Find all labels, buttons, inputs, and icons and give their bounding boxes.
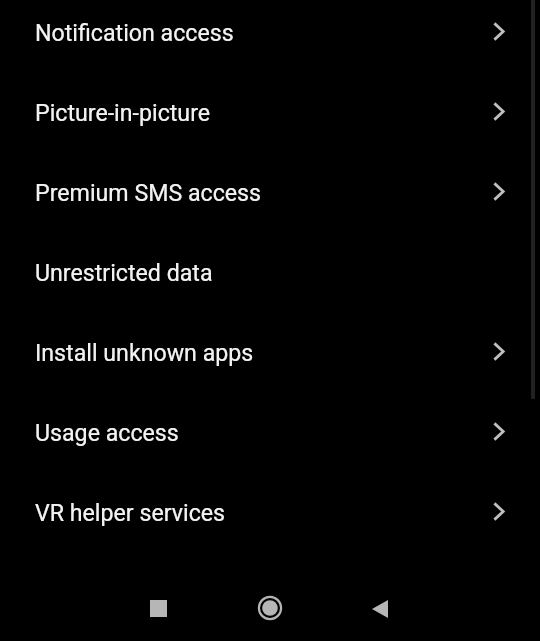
staticText: Picture-in-picture bbox=[35, 99, 211, 126]
button[interactable]: Home bbox=[240, 578, 300, 638]
button[interactable]: Unrestricted data bbox=[0, 240, 540, 320]
staticText: Premium SMS access bbox=[35, 179, 262, 206]
button[interactable]: Install unknown apps bbox=[0, 320, 540, 400]
button[interactable]: Premium SMS access bbox=[0, 160, 540, 240]
button[interactable]: Usage access bbox=[0, 400, 540, 480]
button[interactable]: Picture-in-picture bbox=[0, 80, 540, 160]
button[interactable]: Recent apps bbox=[128, 578, 188, 638]
staticText: VR helper services bbox=[35, 499, 226, 526]
button[interactable]: VR helper services bbox=[0, 480, 540, 560]
staticText: Install unknown apps bbox=[35, 339, 254, 366]
staticText: Notification access bbox=[35, 19, 234, 46]
button[interactable]: Notification access bbox=[0, 0, 540, 80]
staticText: Usage access bbox=[35, 419, 179, 446]
button[interactable]: Back bbox=[350, 579, 410, 639]
staticText: Unrestricted data bbox=[35, 259, 213, 286]
